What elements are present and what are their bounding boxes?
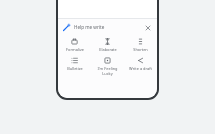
- staticText: Write a draft: [129, 66, 152, 71]
- staticText: Shorten: [133, 47, 148, 52]
- staticText: Help me write: [74, 24, 105, 30]
- button[interactable]: Close: [143, 23, 152, 32]
- staticText: Bulletize: [67, 66, 83, 71]
- button[interactable]: I'm Feeling Lucky: [91, 57, 124, 76]
- button[interactable]: Help me write: [58, 19, 157, 35]
- button[interactable]: Write a draft: [124, 57, 157, 71]
- button[interactable]: Elaborate: [91, 38, 124, 52]
- button[interactable]: Formalize: [58, 38, 91, 52]
- staticText: I'm Feeling Lucky: [92, 66, 123, 76]
- staticText: Elaborate: [99, 47, 117, 52]
- staticText: Formalize: [66, 47, 84, 52]
- button[interactable]: Bulletize: [58, 57, 91, 71]
- button[interactable]: Shorten: [124, 38, 157, 52]
